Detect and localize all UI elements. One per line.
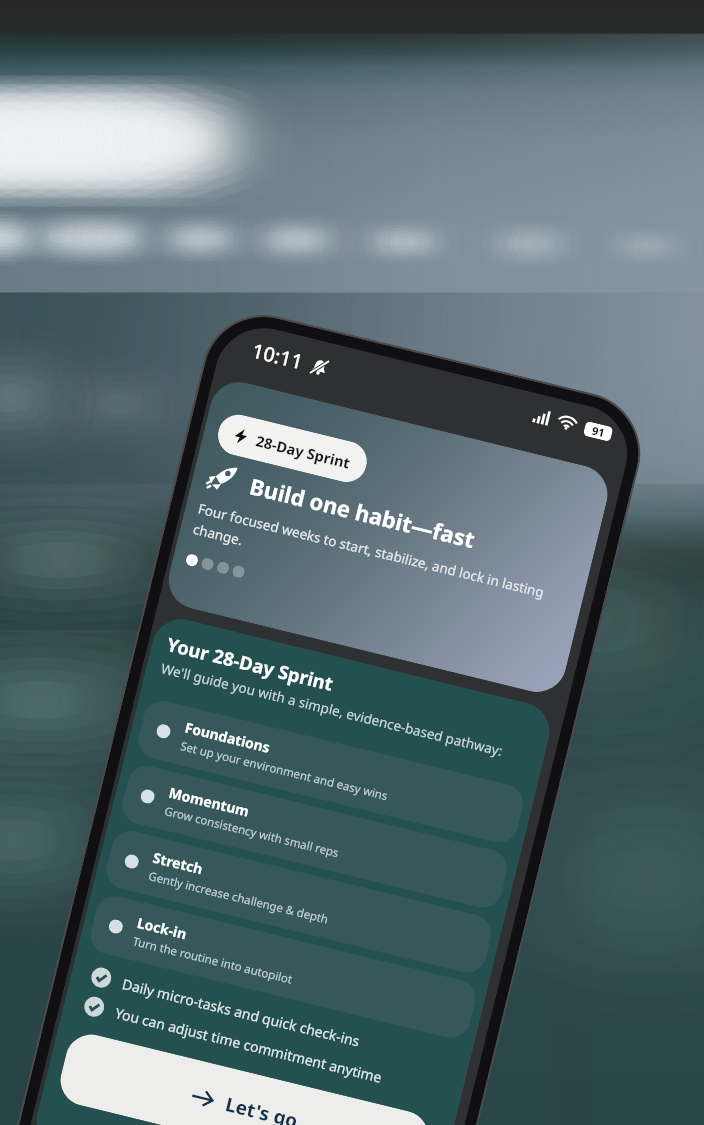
button[interactable]: Let's go <box>55 1029 434 1125</box>
staticText: Foundations <box>183 718 273 757</box>
staticText: Set up your environment and easy wins <box>179 738 389 804</box>
staticText: Four focused weeks to start, stabilize, … <box>191 499 581 630</box>
staticText: Lock-in <box>135 913 189 943</box>
staticText: Turn the routine into autopilot <box>131 933 294 988</box>
staticText: We'll guide you with a simple, evidence-… <box>159 659 505 760</box>
staticText: Stretch <box>151 848 205 878</box>
button[interactable]: 28-Day Sprint <box>214 410 371 486</box>
staticText: Gently increase challenge & depth <box>147 868 330 928</box>
staticText: 10:11 <box>249 337 306 376</box>
button[interactable]: Momentum <box>118 762 511 912</box>
staticText: Let's go <box>223 1091 301 1125</box>
staticText: You can adjust time commitment anytime <box>113 1003 384 1087</box>
staticText: Momentum <box>167 783 251 821</box>
button[interactable]: Lock-in <box>87 892 479 1042</box>
staticText: Build one habit—fast <box>247 470 478 554</box>
button[interactable]: Stretch <box>102 827 495 977</box>
staticText: Your 28-Day Sprint <box>165 631 337 696</box>
staticText: Daily micro-tasks and quick check-ins <box>120 974 362 1050</box>
button[interactable]: Foundations <box>134 697 527 847</box>
staticText: 91 <box>590 423 607 440</box>
staticText: 28-Day Sprint <box>254 430 353 473</box>
staticText: Grow consistency with small reps <box>163 803 340 861</box>
